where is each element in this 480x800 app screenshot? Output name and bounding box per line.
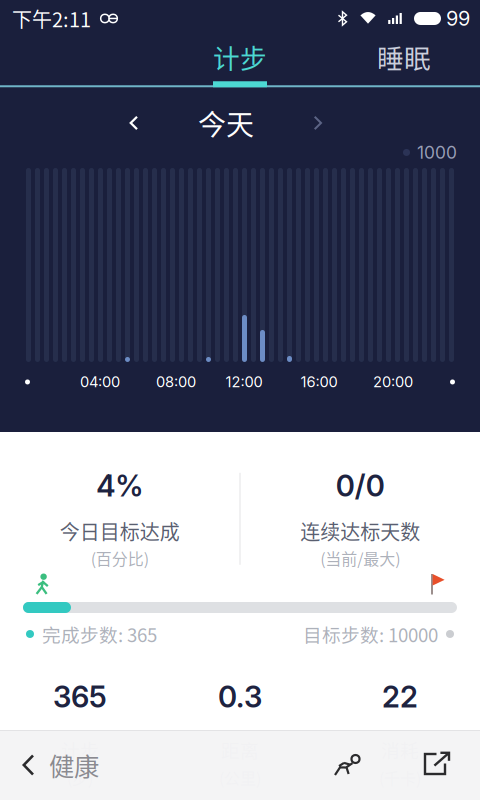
staticText: 22 xyxy=(382,679,418,714)
button[interactable]: Share xyxy=(408,730,466,800)
button[interactable]: Activity xyxy=(316,730,380,800)
staticText: 365 xyxy=(53,679,107,714)
staticText: (当前/最大) xyxy=(320,546,400,570)
staticText: (百分比) xyxy=(91,546,149,570)
staticText: 睡眠 xyxy=(377,38,431,76)
button[interactable]: 计步 xyxy=(152,31,328,87)
staticText: 0/0 xyxy=(336,468,385,503)
staticText: 完成步数: 365 xyxy=(42,620,157,647)
staticText: 今日目标达成 xyxy=(60,516,180,545)
staticText: 04:00 xyxy=(80,373,120,391)
staticText: 1000 xyxy=(417,142,457,163)
button[interactable]: 健康 xyxy=(0,730,200,800)
staticText: 下午2:11 xyxy=(12,4,91,33)
staticText: 0.3 xyxy=(218,679,262,714)
staticText: 20:00 xyxy=(373,373,413,391)
staticText: 08:00 xyxy=(156,373,196,391)
staticText: 99 xyxy=(446,6,470,31)
staticText: 12:00 xyxy=(225,373,262,391)
staticText: 4% xyxy=(96,468,143,503)
staticText: 健康 xyxy=(49,747,99,783)
staticText: 今天 xyxy=(198,103,254,143)
staticText: (步) xyxy=(67,766,93,789)
button[interactable]: Next day xyxy=(296,102,340,144)
staticText: 目标步数: 10000 xyxy=(303,620,438,647)
button[interactable]: Previous day xyxy=(112,102,156,144)
button[interactable]: 睡眠 xyxy=(328,31,480,87)
staticText: 连续达标天数 xyxy=(300,516,420,545)
staticText: 计步 xyxy=(61,736,99,763)
staticText: 计步 xyxy=(213,38,267,76)
staticText: 16:00 xyxy=(300,373,337,391)
